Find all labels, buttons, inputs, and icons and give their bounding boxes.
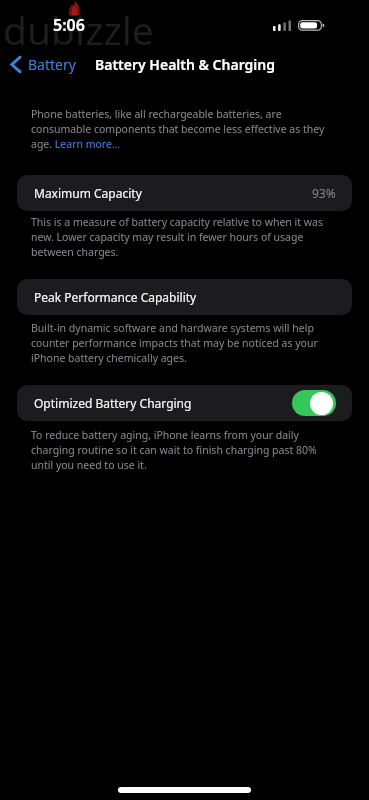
button[interactable]: Optimized Battery Charging	[17, 385, 352, 421]
staticText: This is a measure of battery capacity re…	[31, 215, 331, 259]
staticText: Battery	[28, 55, 76, 74]
staticText: To reduce battery aging, iPhone learns f…	[31, 428, 331, 472]
button[interactable]: Battery	[0, 55, 84, 74]
staticText: Optimized Battery Charging	[34, 395, 192, 411]
button[interactable]: Maximum Capacity	[17, 175, 352, 211]
staticText: Phone batteries, like all rechargeable b…	[31, 107, 331, 151]
staticText: Battery Health & Charging	[95, 55, 275, 74]
staticText: Maximum Capacity	[34, 185, 142, 201]
staticText: Peak Performance Capability	[34, 289, 197, 305]
staticText: Built-in dynamic software and hardware s…	[31, 321, 331, 365]
staticText: dubizzle	[3, 3, 154, 56]
staticText: 5:06	[53, 14, 85, 36]
button[interactable]: Optimized Battery Charging toggle, on	[292, 390, 336, 416]
staticText: 93%	[312, 185, 336, 201]
button[interactable]: Peak Performance Capability	[17, 279, 352, 315]
